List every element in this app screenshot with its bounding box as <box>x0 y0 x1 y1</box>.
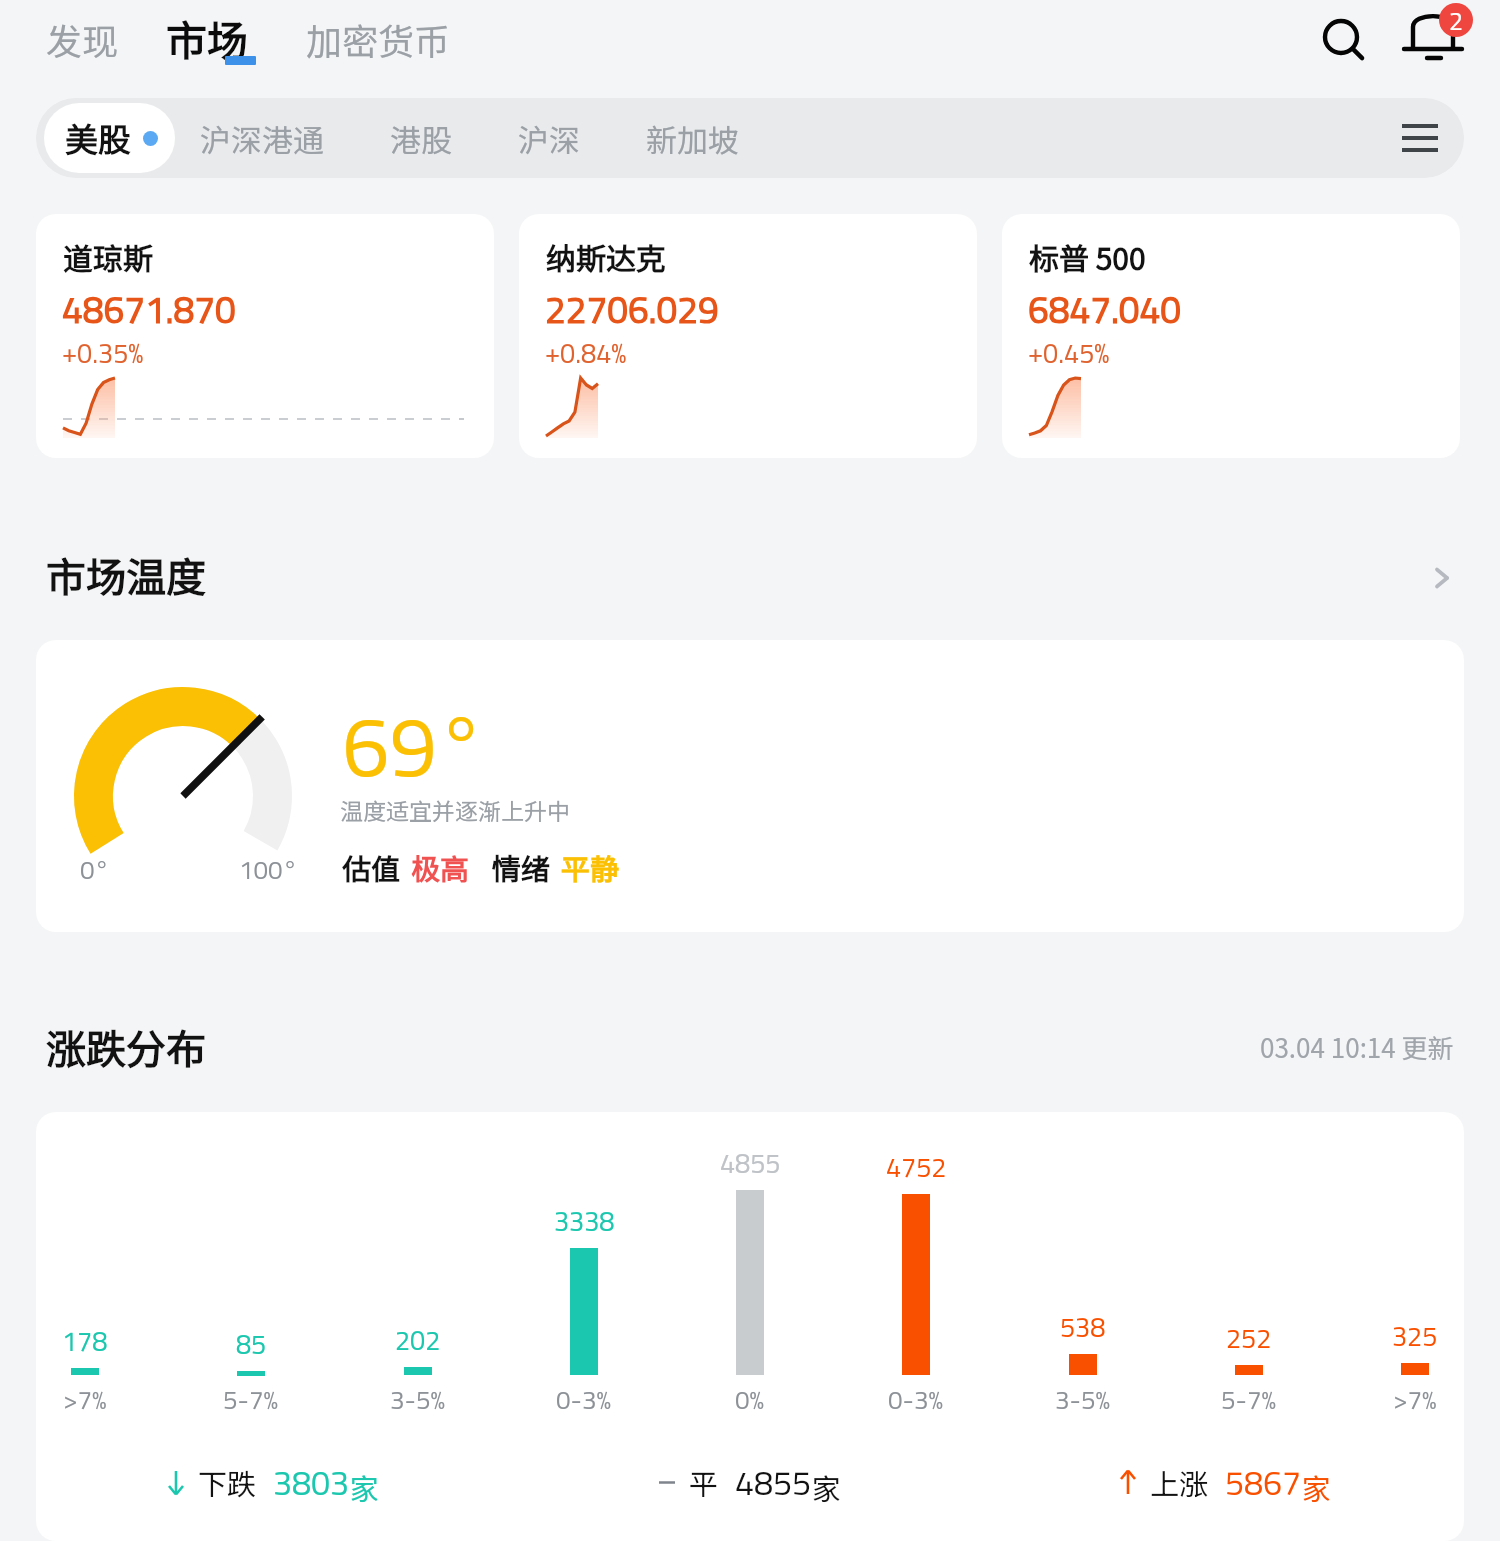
button[interactable]: Notifications <box>1402 14 1464 76</box>
staticText: 5867 <box>1225 1456 1302 1508</box>
staticText: 发现 <box>46 13 119 65</box>
staticText: 0-3% <box>888 1380 944 1420</box>
staticText: 美股 <box>65 114 131 162</box>
staticText: 估值 <box>342 846 401 888</box>
staticText: 178 <box>62 1320 108 1361</box>
staticText: 69° <box>342 680 485 809</box>
staticText: 5-7% <box>223 1380 279 1420</box>
staticText: 0° <box>80 850 110 890</box>
staticText: 85 <box>236 1323 267 1364</box>
staticText: 涨跌分布 <box>46 1018 206 1076</box>
staticText: >7% <box>1393 1380 1437 1420</box>
staticText: 加密货币 <box>306 13 451 65</box>
button[interactable]: 市场 <box>158 6 256 85</box>
staticText: 上涨 <box>1150 1461 1209 1503</box>
staticText: 家 <box>812 1466 842 1508</box>
staticText: 新加坡 <box>646 116 739 161</box>
button[interactable]: 沪深港通 <box>200 98 324 178</box>
staticText: 4752 <box>886 1146 947 1187</box>
staticText: 538 <box>1060 1306 1106 1347</box>
staticText: 市场 <box>166 8 248 67</box>
staticText: 平 <box>689 1461 719 1503</box>
staticText: +0.84% <box>545 332 627 373</box>
staticText: 3-5% <box>1055 1380 1111 1420</box>
staticText: 情绪 <box>492 846 551 888</box>
staticText: 沪深 <box>518 116 580 161</box>
staticText: 48671.870 <box>62 281 236 337</box>
staticText: +0.35% <box>62 332 144 373</box>
staticText: 标普 500 <box>1029 235 1146 278</box>
button[interactable]: Search <box>1311 14 1373 76</box>
staticText: 6847.040 <box>1028 281 1182 337</box>
staticText: 4855 <box>720 1142 781 1183</box>
button[interactable]: 发现 <box>38 9 127 81</box>
staticText: 纳斯达克 <box>546 235 666 278</box>
staticText: +0.45% <box>1028 332 1110 373</box>
staticText: 2 <box>1449 3 1464 36</box>
staticText: 平静 <box>561 846 620 888</box>
staticText: 极高 <box>411 846 470 888</box>
staticText: 3-5% <box>390 1380 446 1420</box>
staticText: 325 <box>1392 1315 1438 1356</box>
staticText: 252 <box>1226 1317 1272 1358</box>
staticText: 家 <box>350 1466 380 1508</box>
staticText: >7% <box>63 1380 107 1420</box>
staticText: 3803 <box>273 1456 350 1508</box>
staticText: 家 <box>1302 1466 1332 1508</box>
staticText: 沪深港通 <box>200 116 324 161</box>
button[interactable]: 标普 500 <box>1002 214 1460 458</box>
button[interactable]: 加密货币 <box>298 9 459 81</box>
staticText: 100° <box>239 850 298 890</box>
staticText: 港股 <box>390 116 452 161</box>
staticText: 202 <box>395 1319 441 1360</box>
staticText: 5-7% <box>1221 1380 1277 1420</box>
staticText: 下跌 <box>198 1461 257 1503</box>
staticText: 0% <box>735 1380 765 1420</box>
button[interactable]: 新加坡 <box>646 98 739 178</box>
staticText: 市场温度 <box>46 546 206 604</box>
staticText: 4855 <box>735 1456 812 1508</box>
staticText: 温度适宜并逐渐上升中 <box>340 793 570 826</box>
button[interactable]: 美股 <box>44 103 175 173</box>
button[interactable]: 市场温度 <box>0 548 1500 608</box>
staticText: 22706.029 <box>545 281 719 337</box>
button[interactable]: 道琼斯 <box>36 214 494 458</box>
staticText: 03.04 10:14 更新 <box>1260 1028 1454 1066</box>
button[interactable]: More markets <box>1380 98 1460 178</box>
staticText: 0-3% <box>556 1380 612 1420</box>
button[interactable]: 0° <box>36 640 1464 932</box>
staticText: 3338 <box>554 1200 615 1241</box>
button[interactable]: 港股 <box>390 98 452 178</box>
button[interactable]: 沪深 <box>518 98 580 178</box>
staticText: 道琼斯 <box>63 235 153 278</box>
button[interactable]: 纳斯达克 <box>519 214 977 458</box>
